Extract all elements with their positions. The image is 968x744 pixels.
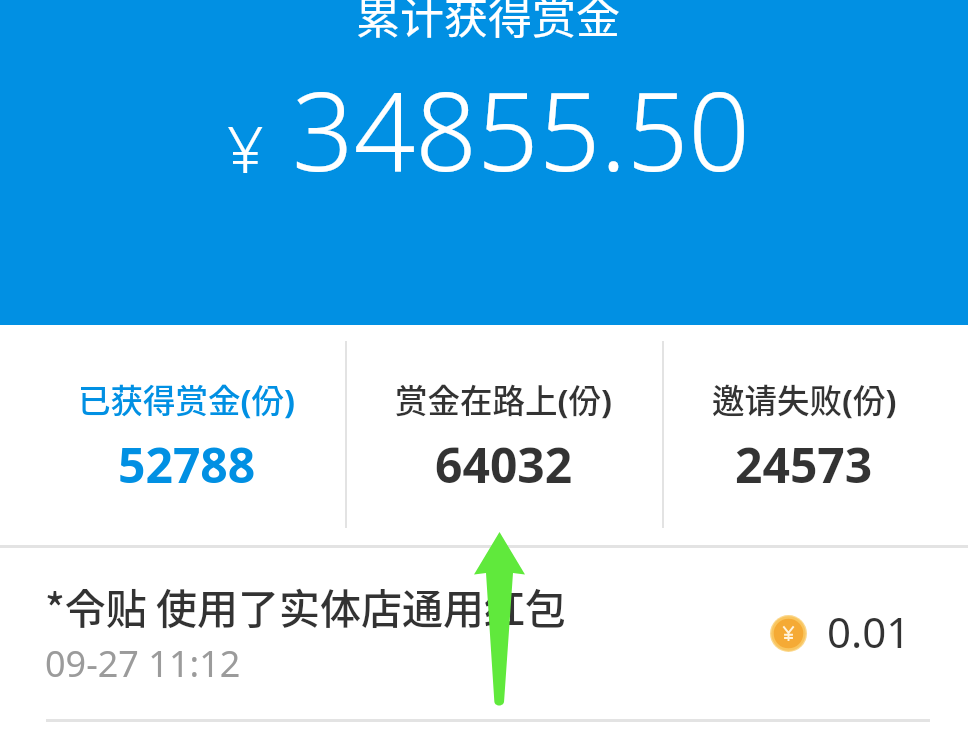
staticText: *令贴 使用了实体店通用红包 bbox=[45, 576, 567, 635]
staticText: 64032 bbox=[435, 432, 573, 497]
staticText: 34855.50 bbox=[292, 56, 751, 203]
staticText: 邀请失败(份) bbox=[712, 375, 897, 422]
button[interactable]: *令贴 使用了实体店通用红包 bbox=[0, 548, 968, 720]
staticText: ¥ bbox=[227, 105, 264, 192]
staticText: 52788 bbox=[118, 432, 256, 497]
button[interactable]: 已获得赏金(份) bbox=[27, 375, 347, 505]
staticText: 累计获得赏金 bbox=[356, 0, 620, 47]
other: Bounty amount in yuan bbox=[770, 615, 807, 652]
staticText: 24573 bbox=[735, 432, 873, 497]
button[interactable]: 邀请失败(份) bbox=[644, 375, 964, 505]
button[interactable]: 赏金在路上(份) bbox=[344, 375, 664, 505]
staticText: 09-27 11:12 bbox=[45, 639, 241, 688]
staticText: 已获得赏金(份) bbox=[78, 375, 296, 422]
staticText: 0.01 bbox=[827, 603, 911, 660]
staticText: 赏金在路上(份) bbox=[395, 375, 613, 422]
